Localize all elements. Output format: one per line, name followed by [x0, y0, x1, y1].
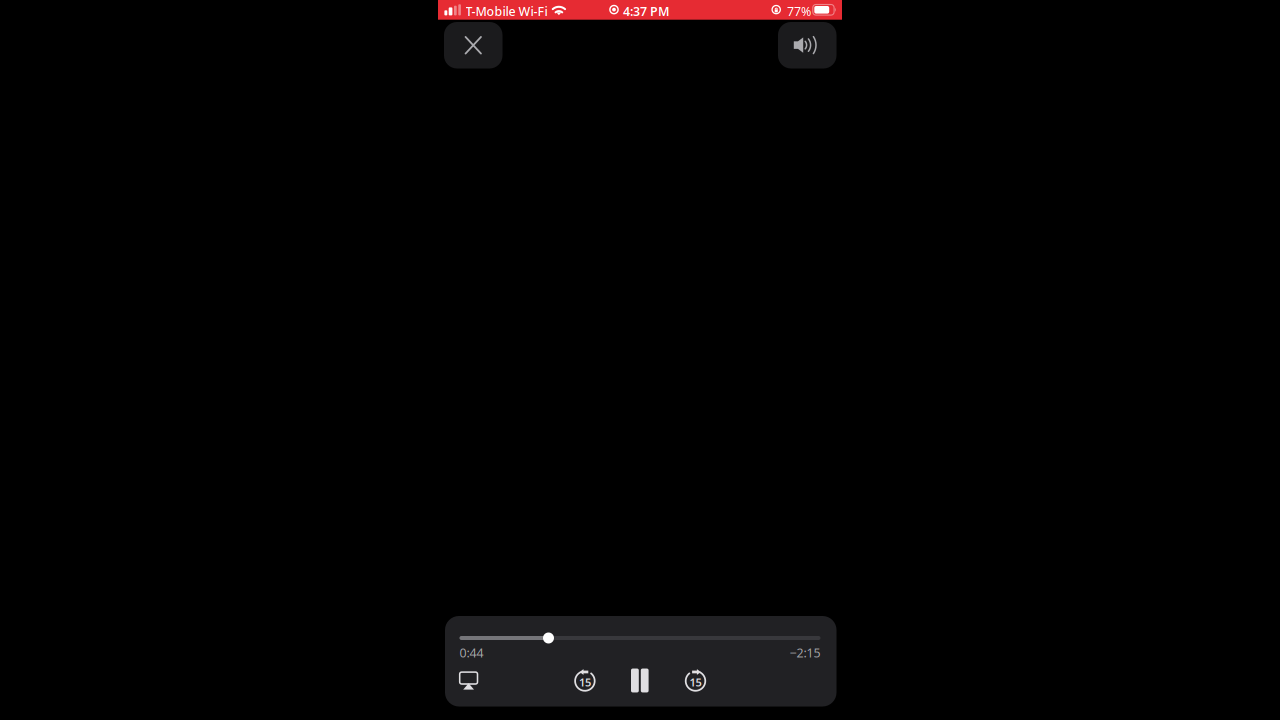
staticText: −2:15 [789, 644, 820, 661]
button[interactable]: Skip forward 15 seconds [673, 659, 717, 701]
button[interactable]: AirPlay [447, 659, 491, 701]
button[interactable]: Skip back 15 seconds [563, 659, 607, 701]
staticText: 4:37 PM [623, 3, 670, 19]
staticText: T-Mobile Wi-Fi [466, 3, 548, 19]
button[interactable]: Close [444, 22, 502, 68]
button[interactable]: Mute [778, 22, 836, 68]
button[interactable]: Pause [618, 659, 662, 701]
staticText: 77% [787, 3, 811, 19]
staticText: 0:44 [459, 644, 483, 661]
staticText: 15 [689, 675, 701, 689]
staticText: 15 [579, 675, 591, 689]
